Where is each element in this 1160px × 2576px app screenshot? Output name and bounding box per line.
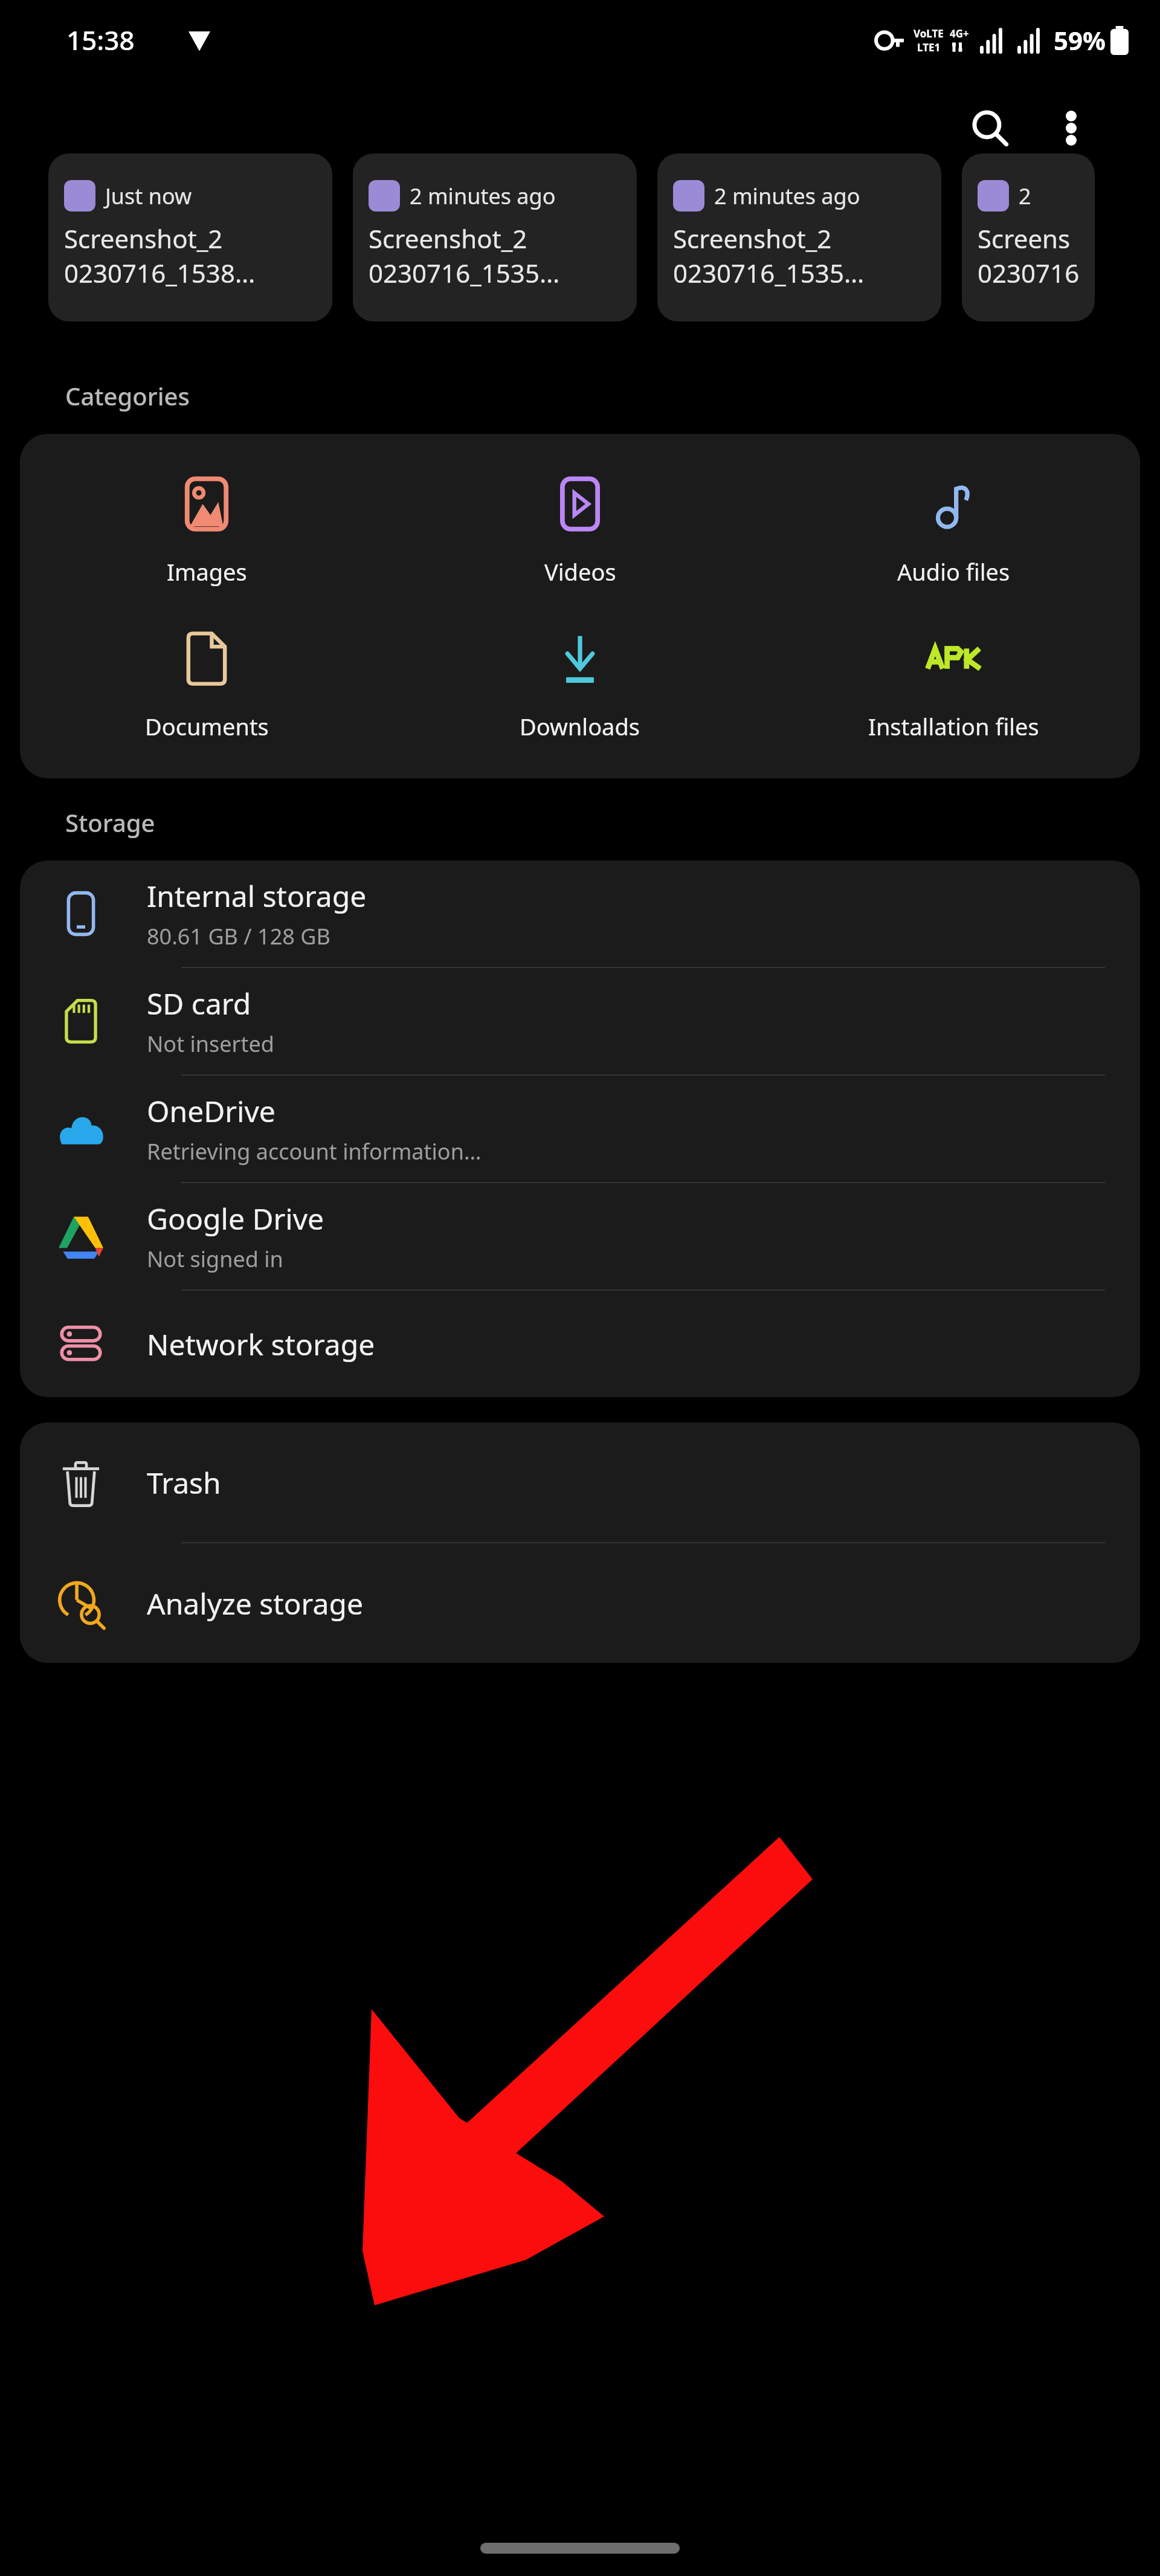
staticText: 4G+ [950, 27, 969, 40]
staticText: 0230716_1… [978, 256, 1083, 290]
button[interactable]: SD card [20, 968, 1140, 1074]
staticText: 2 minu [1019, 181, 1083, 211]
staticText: Audio files [897, 556, 1010, 587]
staticText: Screenshot_2 [64, 221, 223, 256]
staticText: Internal storage [147, 876, 367, 915]
staticText: Screenshot_2 [673, 221, 832, 256]
staticText: LTE1 [917, 40, 941, 54]
staticText: Trash [147, 1463, 221, 1502]
staticText: 0230716_1535… [369, 256, 560, 290]
staticText: Videos [544, 556, 616, 587]
button[interactable]: Network storage [20, 1291, 1140, 1397]
staticText: Analyze storage [147, 1584, 363, 1623]
staticText: 0230716_1538… [64, 256, 256, 290]
staticText: Images [167, 556, 247, 587]
staticText: Downloads [520, 711, 640, 742]
button[interactable]: 2 minu [962, 153, 1095, 321]
staticText: Screenshot [978, 221, 1083, 256]
staticText: Not signed in [147, 1244, 283, 1274]
staticText: Documents [145, 711, 269, 742]
staticText: Categories [65, 379, 190, 412]
button[interactable]: More options [1038, 95, 1104, 161]
button[interactable]: Audio files [767, 469, 1140, 591]
staticText: Storage [65, 806, 155, 839]
staticText: 80.61 GB / 128 GB [147, 922, 330, 951]
staticText: 15:38 [66, 22, 135, 58]
staticText: 2 minutes ago [714, 181, 860, 211]
button[interactable]: Videos [393, 469, 767, 591]
staticText: Not inserted [147, 1029, 274, 1059]
staticText: Screenshot_2 [369, 221, 527, 256]
button[interactable]: Google Drive [20, 1183, 1140, 1290]
button[interactable]: Images [20, 469, 393, 591]
button[interactable]: Documents [20, 624, 393, 746]
staticText: SD card [147, 984, 251, 1023]
staticText: Google Drive [147, 1199, 324, 1238]
staticText: 59% [1054, 23, 1106, 57]
button[interactable]: Downloads [393, 624, 767, 746]
staticText: Network storage [147, 1325, 375, 1364]
button[interactable]: OneDrive [20, 1076, 1140, 1182]
staticText: Just now [105, 181, 192, 211]
staticText: Retrieving account information… [147, 1137, 482, 1166]
button[interactable]: Installation files [767, 624, 1140, 746]
button[interactable]: 2 minutes ago [657, 153, 941, 321]
staticText: 0230716_1535… [673, 256, 865, 290]
button[interactable]: Analyze storage [20, 1543, 1140, 1663]
button[interactable]: Internal storage [20, 860, 1140, 967]
staticText: VoLTE [913, 27, 944, 40]
staticText: 2 minutes ago [410, 181, 556, 211]
staticText: OneDrive [147, 1091, 275, 1131]
staticText: Installation files [868, 711, 1039, 742]
button[interactable]: Trash [20, 1422, 1140, 1542]
button[interactable]: Search [957, 95, 1023, 161]
button[interactable]: 2 minutes ago [353, 153, 637, 321]
button[interactable]: Just now [48, 153, 332, 321]
